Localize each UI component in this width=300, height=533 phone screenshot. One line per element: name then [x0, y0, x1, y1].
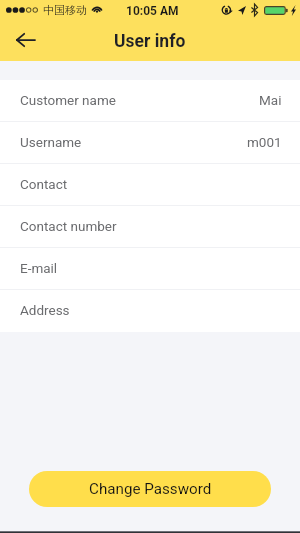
button[interactable]: E-mail	[0, 248, 300, 289]
button[interactable]: Back	[5, 24, 45, 56]
staticText: Address	[20, 302, 70, 318]
button[interactable]: Contact number	[0, 206, 300, 247]
staticText: Contact	[20, 176, 68, 192]
staticText: m001	[247, 134, 282, 150]
button[interactable]: Contact	[0, 164, 300, 205]
button[interactable]: Customer name	[0, 80, 300, 121]
button[interactable]: Username	[0, 122, 300, 163]
staticText: E-mail	[20, 260, 58, 276]
staticText: Change Password	[89, 480, 212, 498]
button[interactable]: Address	[0, 290, 300, 332]
staticText: 10:05 AM	[126, 4, 179, 18]
staticText: Mai	[259, 92, 282, 108]
staticText: 中国移动	[43, 3, 87, 17]
staticText: User info	[114, 31, 186, 52]
staticText: Username	[20, 134, 82, 150]
button[interactable]: Change Password	[29, 471, 271, 507]
staticText: Customer name	[20, 92, 116, 108]
staticText: Contact number	[20, 218, 117, 234]
